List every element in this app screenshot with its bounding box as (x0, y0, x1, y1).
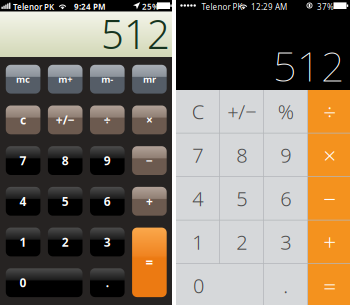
staticText: 7 (20, 153, 27, 168)
staticText: 8 (62, 153, 69, 168)
staticText: + (323, 227, 336, 257)
staticText: % (278, 98, 294, 125)
staticText: c (20, 112, 26, 128)
staticText: 1 (192, 229, 203, 255)
button[interactable]: 0 (176, 264, 263, 305)
button[interactable]: 9 (90, 146, 125, 175)
staticText: m- (101, 73, 113, 85)
button[interactable]: mr (132, 65, 167, 94)
staticText: . (106, 275, 109, 291)
button[interactable]: = (132, 228, 167, 297)
button[interactable]: 3 (264, 220, 307, 263)
staticText: 0 (20, 275, 27, 291)
staticText: Telenor PK (201, 2, 242, 12)
staticText: 0 (193, 272, 204, 299)
button[interactable]: 0 (6, 268, 82, 297)
staticText: 512 (101, 7, 170, 60)
button[interactable]: 3 (90, 228, 125, 256)
staticText: . (283, 272, 288, 299)
staticText: 37% (317, 2, 334, 12)
button[interactable]: ÷ (308, 90, 350, 133)
button[interactable]: 9 (264, 133, 307, 176)
staticText: + (146, 193, 153, 209)
staticText: 9 (280, 142, 291, 168)
staticText: 9 (104, 153, 111, 168)
staticText: = (145, 253, 153, 271)
button[interactable]: 7 (6, 146, 40, 175)
button[interactable]: 6 (264, 177, 307, 220)
staticText: 1 (20, 234, 27, 250)
staticText: 25% (142, 1, 159, 12)
button[interactable]: C (176, 90, 219, 133)
button[interactable]: × (308, 133, 350, 176)
staticText: 12:29 AM (251, 2, 287, 12)
staticText: 2 (62, 234, 69, 250)
button[interactable]: . (264, 264, 307, 305)
button[interactable]: ÷ (90, 105, 125, 134)
button[interactable]: + (132, 187, 167, 216)
button[interactable]: 6 (90, 187, 125, 216)
staticText: 7 (192, 142, 203, 168)
button[interactable]: − (308, 177, 350, 220)
staticText: C (192, 98, 204, 125)
staticText: 4 (192, 185, 203, 212)
staticText: ÷ (104, 112, 111, 128)
staticText: 9:24 PM (74, 1, 106, 12)
staticText: 5 (236, 185, 247, 212)
staticText: 8 (236, 142, 247, 168)
button[interactable]: m+ (48, 65, 82, 94)
button[interactable]: 8 (48, 146, 82, 175)
button[interactable]: 1 (176, 220, 219, 263)
button[interactable]: 2 (48, 228, 82, 256)
staticText: ÷ (323, 96, 336, 126)
staticText: +/− (227, 98, 256, 125)
button[interactable]: m- (90, 65, 125, 94)
staticText: Telenor PK (13, 2, 54, 12)
button[interactable]: 5 (220, 177, 263, 220)
button[interactable]: 7 (176, 133, 219, 176)
staticText: 2 (236, 229, 247, 255)
staticText: mr (143, 73, 156, 85)
staticText: = (323, 270, 336, 300)
staticText: 3 (104, 234, 111, 250)
button[interactable]: c (6, 105, 40, 134)
staticText: − (323, 183, 336, 213)
staticText: +/− (56, 112, 75, 128)
button[interactable]: % (264, 90, 307, 133)
button[interactable]: − (132, 146, 167, 175)
staticText: 6 (104, 193, 111, 209)
button[interactable]: 4 (6, 187, 40, 216)
staticText: × (323, 140, 336, 170)
staticText: 5 (62, 193, 69, 209)
button[interactable]: 1 (6, 228, 40, 256)
button[interactable]: +/− (220, 90, 263, 133)
staticText: × (146, 112, 153, 128)
staticText: 512 (273, 38, 345, 93)
button[interactable]: = (308, 264, 350, 305)
button[interactable]: . (90, 268, 125, 297)
button[interactable]: × (132, 105, 167, 134)
button[interactable]: mc (6, 65, 40, 94)
button[interactable]: 8 (220, 133, 263, 176)
button[interactable]: 4 (176, 177, 219, 220)
staticText: 3 (280, 229, 291, 255)
button[interactable]: 2 (220, 220, 263, 263)
button[interactable]: 5 (48, 187, 82, 216)
staticText: 4 (20, 193, 27, 209)
staticText: − (146, 153, 153, 168)
button[interactable]: +/− (48, 105, 82, 134)
staticText: 6 (280, 185, 291, 212)
button[interactable]: + (308, 220, 350, 263)
staticText: mc (16, 73, 30, 85)
staticText: m+ (58, 73, 72, 85)
